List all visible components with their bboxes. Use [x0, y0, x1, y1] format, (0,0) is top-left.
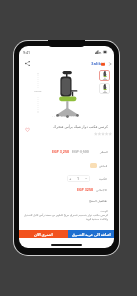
button[interactable]: Fabric colour — [90, 163, 97, 168]
button[interactable]: Share — [23, 59, 32, 68]
staticText: EGP 3,500 — [72, 149, 89, 154]
staticText: تفاصيل المنتج — [89, 199, 108, 203]
staticText: 1 — [77, 176, 80, 181]
staticText: 3alik — [91, 61, 101, 67]
button[interactable]: Back — [105, 59, 114, 68]
button[interactable]: Increase quantity — [67, 175, 74, 182]
staticText: الاجمالي — [96, 188, 108, 192]
button[interactable]: اضافة الى عربة التسوق — [68, 230, 114, 238]
staticText: كرسي مكتب دوار شبك برأس متحرك — [19, 124, 108, 129]
staticText: 60 cm — [61, 115, 68, 118]
staticText: الوصف — [24, 209, 108, 212]
staticText: قماش — [99, 164, 108, 168]
staticText: + — [69, 176, 72, 181]
staticText: 120 cm — [34, 90, 42, 93]
button[interactable]: Product image 2 — [99, 83, 110, 94]
staticText: 9:41 — [23, 50, 31, 55]
staticText: الكمية — [99, 177, 108, 181]
button[interactable]: Add to favourites — [23, 125, 31, 133]
staticText: EGP 3,250 — [52, 149, 70, 154]
staticText: السعر — [100, 150, 108, 154]
button[interactable]: اشتري الان — [19, 230, 68, 238]
staticText: اضافة الى عربة التسوق — [72, 232, 111, 237]
button[interactable]: Product image 1 — [99, 70, 110, 81]
staticText: اشتري الان — [34, 232, 53, 237]
staticText: كرسي مكتب دوار بتصميم عصري مريح للظهر مع… — [24, 213, 108, 221]
staticText: EGP 3250 — [77, 187, 94, 192]
staticText: − — [85, 176, 88, 181]
button[interactable]: Decrease quantity — [83, 175, 90, 182]
